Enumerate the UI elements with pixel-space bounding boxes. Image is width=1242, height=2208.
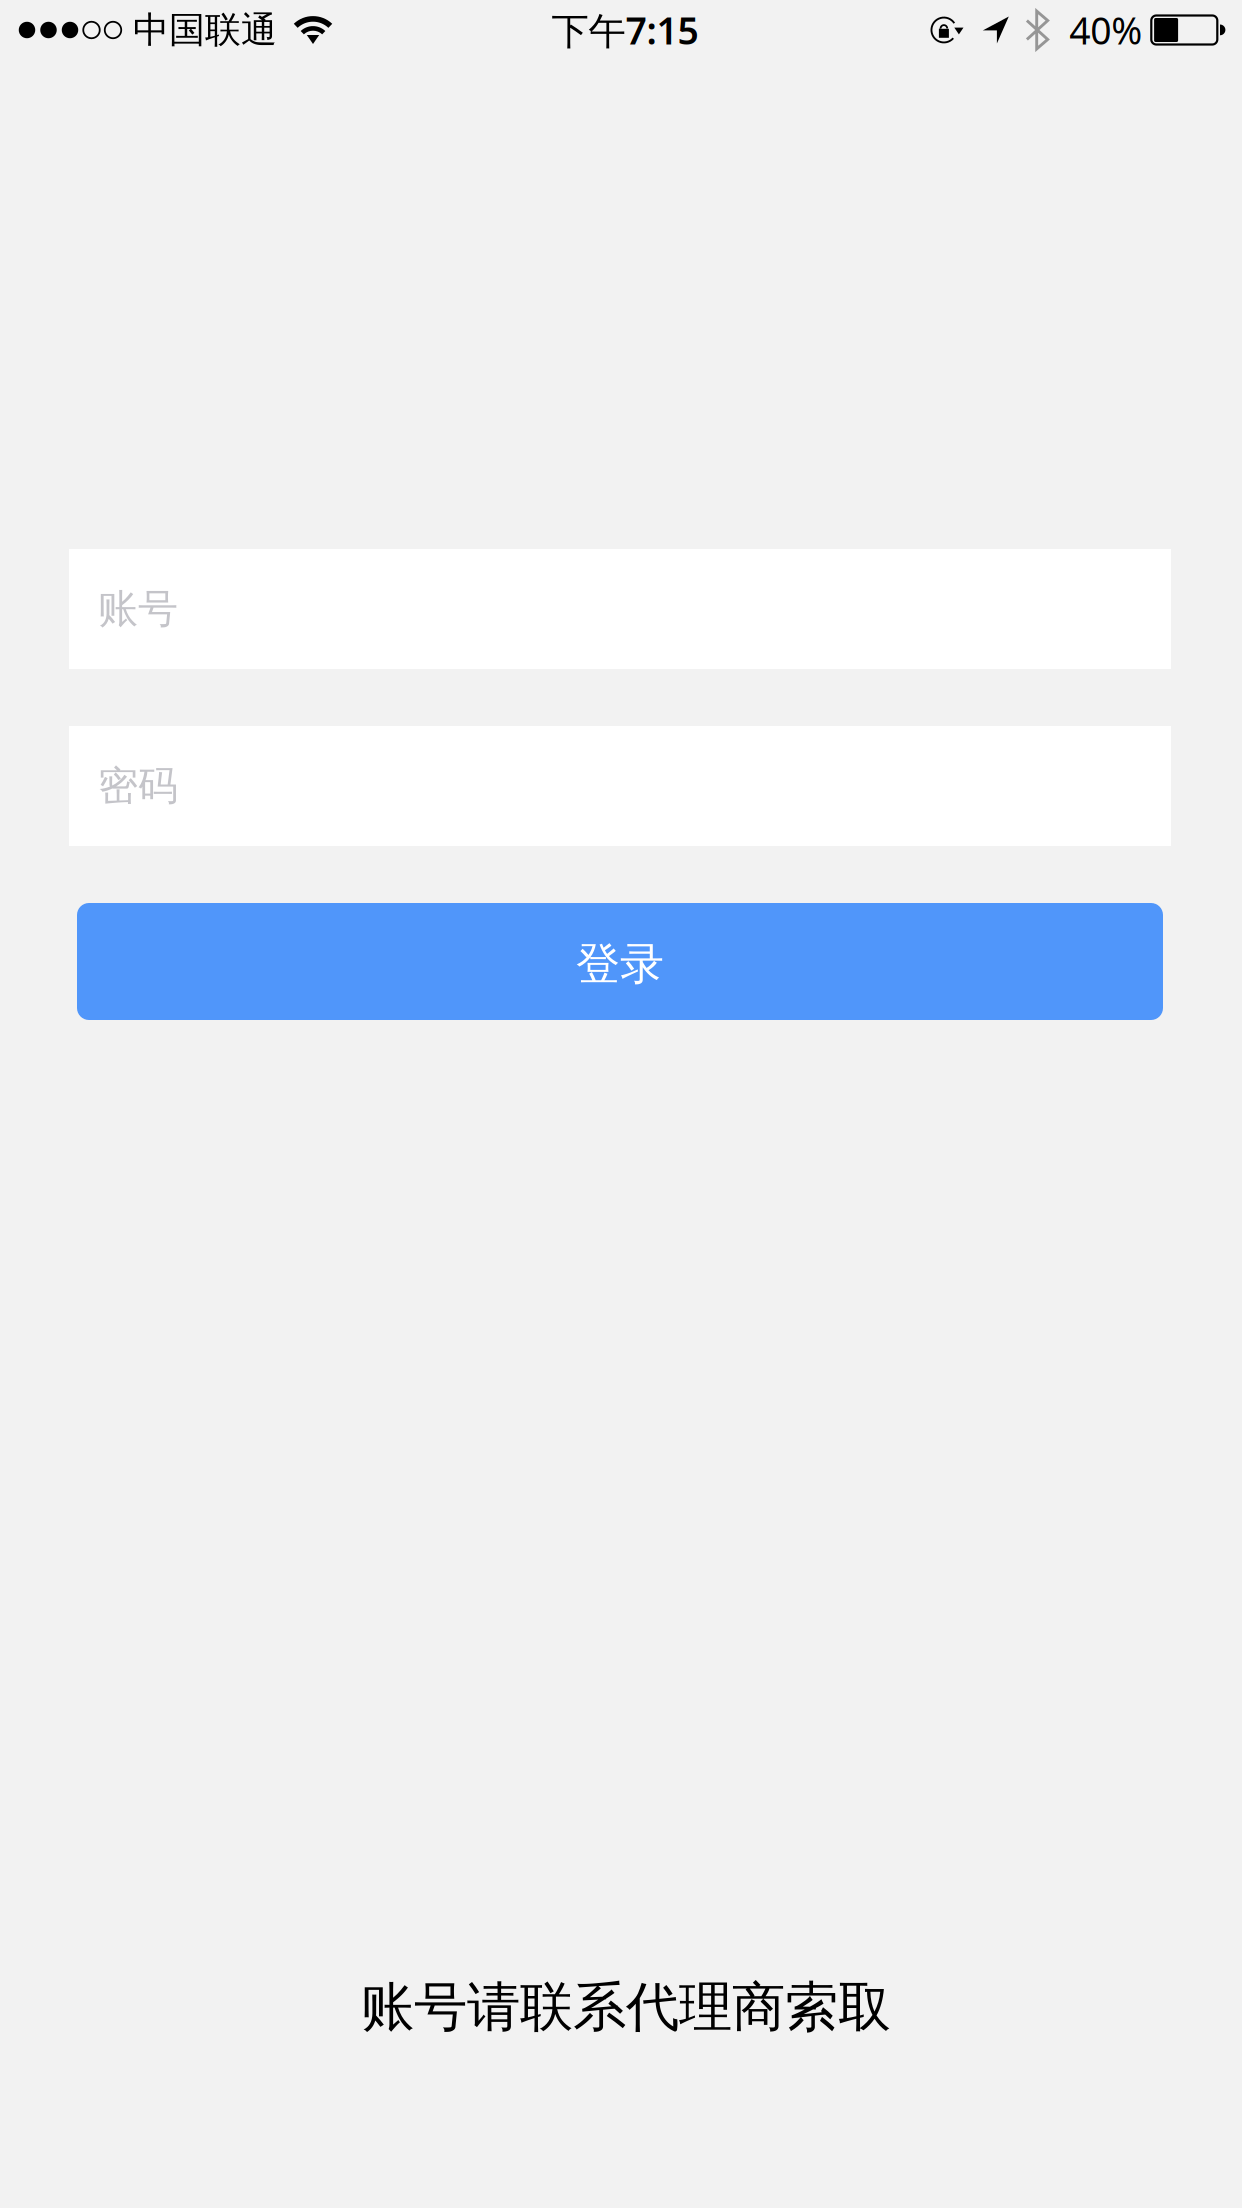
button[interactable]: 密码 [70, 726, 1172, 846]
staticText: 下午7:15 [551, 5, 698, 55]
staticText: 40% [1069, 5, 1142, 55]
staticText: 登录 [576, 937, 664, 991]
button[interactable]: 账号 [70, 549, 1172, 669]
staticText: 账号 [98, 584, 178, 633]
button[interactable]: 登录 [78, 903, 1164, 1020]
staticText: 密码 [98, 761, 178, 810]
staticText: 账号请联系代理商索取 [361, 1974, 891, 2040]
staticText: 中国联通 [133, 8, 277, 52]
